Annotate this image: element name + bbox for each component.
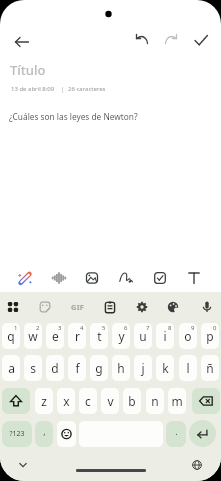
staticText: 0: [213, 324, 217, 332]
button[interactable]: e: [46, 323, 64, 349]
staticText: r: [75, 328, 80, 344]
staticText: GIF: [71, 302, 85, 312]
staticText: 26 caracteres: [68, 85, 106, 93]
button[interactable]: [35, 297, 55, 317]
staticText: k: [162, 360, 169, 376]
button[interactable]: [182, 266, 206, 290]
button[interactable]: i: [156, 323, 174, 349]
button[interactable]: [132, 297, 152, 317]
button[interactable]: [114, 266, 138, 290]
staticText: l: [186, 360, 190, 376]
staticText: t: [97, 328, 102, 344]
staticText: 4: [80, 324, 84, 332]
button[interactable]: [192, 388, 220, 414]
button[interactable]: h: [112, 355, 130, 381]
staticText: n: [151, 393, 159, 409]
staticText: q: [7, 328, 15, 344]
button[interactable]: f: [68, 355, 86, 381]
button[interactable]: x: [57, 388, 75, 414]
button[interactable]: c: [79, 388, 97, 414]
staticText: a: [8, 360, 15, 376]
staticText: ñ: [206, 360, 214, 376]
staticText: 1: [14, 324, 18, 332]
button[interactable]: [163, 297, 183, 317]
staticText: ,: [43, 426, 46, 438]
button[interactable]: [13, 266, 37, 290]
button[interactable]: GIF: [66, 297, 90, 317]
button[interactable]: [189, 420, 216, 447]
button[interactable]: w: [24, 323, 42, 349]
staticText: .: [175, 426, 178, 438]
staticText: w: [28, 328, 38, 344]
button[interactable]: [15, 457, 31, 473]
button[interactable]: [148, 266, 172, 290]
button[interactable]: ?123: [2, 421, 32, 447]
staticText: ¿Cuáles son las leyes de Newton?: [9, 111, 138, 122]
staticText: 7: [146, 324, 150, 332]
staticText: g: [95, 360, 103, 376]
button[interactable]: q: [2, 323, 20, 349]
staticText: u: [139, 328, 147, 344]
staticText: ?123: [9, 429, 25, 439]
button[interactable]: [47, 266, 71, 290]
button[interactable]: ñ: [201, 355, 219, 381]
button[interactable]: z: [35, 388, 53, 414]
staticText: 8: [168, 324, 172, 332]
button[interactable]: l: [179, 355, 197, 381]
button[interactable]: [57, 421, 76, 447]
staticText: j: [141, 360, 145, 376]
staticText: i: [163, 328, 167, 344]
button[interactable]: [160, 29, 182, 51]
button[interactable]: .: [166, 421, 186, 447]
staticText: Título: [10, 61, 46, 79]
button[interactable]: [11, 31, 33, 53]
button[interactable]: n: [146, 388, 164, 414]
staticText: 5: [102, 324, 106, 332]
button[interactable]: d: [46, 355, 64, 381]
button[interactable]: [3, 297, 23, 317]
staticText: 3: [58, 324, 62, 332]
button[interactable]: t: [90, 323, 108, 349]
staticText: 6: [124, 324, 128, 332]
staticText: p: [206, 328, 214, 344]
button[interactable]: g: [90, 355, 108, 381]
button[interactable]: [100, 297, 120, 317]
button[interactable]: r: [68, 323, 86, 349]
staticText: f: [75, 360, 80, 376]
button[interactable]: s: [24, 355, 42, 381]
button[interactable]: y: [112, 323, 130, 349]
staticText: e: [52, 328, 59, 344]
button[interactable]: [131, 29, 153, 51]
button[interactable]: [190, 29, 212, 51]
button[interactable]: p: [201, 323, 219, 349]
staticText: 13 de abril 8:09: [11, 85, 55, 93]
button[interactable]: [80, 266, 104, 290]
button[interactable]: a: [2, 355, 20, 381]
button[interactable]: b: [123, 388, 141, 414]
button[interactable]: m: [168, 388, 186, 414]
staticText: m: [171, 393, 183, 409]
button[interactable]: ,: [35, 421, 53, 447]
staticText: c: [85, 393, 91, 409]
staticText: s: [30, 360, 36, 376]
button[interactable]: o: [179, 323, 197, 349]
button[interactable]: v: [101, 388, 119, 414]
button[interactable]: [2, 388, 30, 414]
staticText: d: [51, 360, 59, 376]
button[interactable]: [197, 297, 217, 317]
button[interactable]: k: [156, 355, 174, 381]
button[interactable]: [189, 457, 205, 473]
staticText: o: [184, 328, 192, 344]
staticText: b: [128, 393, 136, 409]
staticText: 9: [191, 324, 195, 332]
staticText: v: [107, 393, 114, 409]
button[interactable]: j: [134, 355, 152, 381]
button[interactable]: u: [134, 323, 152, 349]
staticText: z: [41, 393, 47, 409]
staticText: 2: [36, 324, 40, 332]
staticText: y: [118, 328, 125, 344]
staticText: h: [117, 360, 125, 376]
staticText: x: [63, 393, 70, 409]
